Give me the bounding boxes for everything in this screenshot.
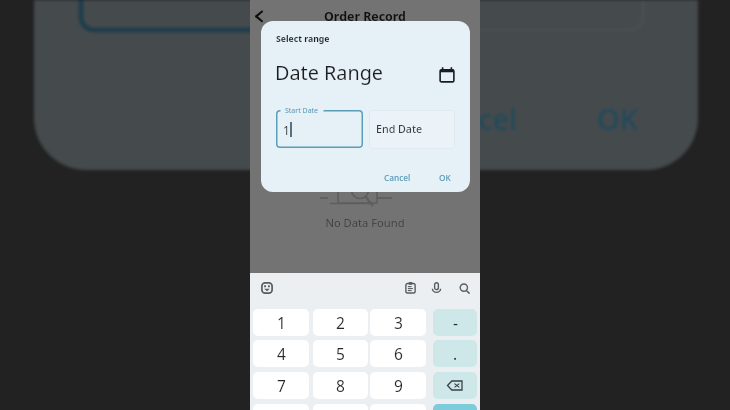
button[interactable]: . — [433, 340, 477, 367]
button[interactable] — [433, 372, 477, 399]
button[interactable]: - — [433, 309, 477, 336]
staticText: Cancel — [384, 172, 411, 183]
button[interactable]: 8 — [313, 372, 368, 399]
button[interactable]: 9 — [370, 372, 426, 399]
staticText: 9 — [394, 375, 403, 396]
staticText: 3 — [394, 312, 403, 333]
staticText: 5 — [336, 343, 345, 364]
button[interactable]: 5 — [313, 340, 368, 367]
button[interactable] — [433, 404, 477, 410]
button[interactable]: * — [253, 404, 309, 410]
staticText: 4 — [277, 343, 286, 364]
button[interactable]: Cancel — [379, 169, 416, 186]
button[interactable]: 0 — [313, 404, 368, 410]
button[interactable]: Back — [251, 6, 271, 26]
staticText: 8 — [336, 375, 345, 396]
button[interactable]: Emoji — [261, 282, 273, 294]
staticText: - — [453, 312, 458, 333]
staticText: OK — [597, 99, 639, 138]
button[interactable]: Open calendar picker — [439, 67, 455, 83]
button[interactable]: Clipboard — [405, 282, 416, 293]
staticText: Date Range — [275, 59, 384, 86]
staticText: 1 — [283, 122, 290, 138]
staticText: 6 — [394, 343, 403, 364]
staticText: End Date — [376, 122, 423, 137]
button[interactable]: Voice input — [431, 282, 442, 293]
staticText: 1 — [277, 312, 286, 333]
staticText: Start Date — [285, 106, 319, 116]
staticText: . — [453, 343, 458, 364]
button[interactable]: 6 — [370, 340, 426, 367]
staticText: 2 — [336, 312, 345, 333]
button[interactable]: 7 — [253, 372, 309, 399]
button[interactable]: 3 — [370, 309, 426, 336]
staticText: No Data Found — [250, 215, 480, 230]
button[interactable]: Search — [459, 283, 470, 294]
staticText: Cancel — [425, 99, 517, 138]
button[interactable]: End Date — [369, 110, 455, 149]
button[interactable]: Start Date — [276, 110, 363, 148]
staticText: Order Record — [250, 8, 480, 25]
button[interactable]: 2 — [313, 309, 368, 336]
button[interactable]: 4 — [253, 340, 309, 367]
staticText: 7 — [277, 375, 286, 396]
staticText: Select range — [276, 33, 330, 45]
button[interactable]: # — [370, 404, 426, 410]
staticText: OK — [439, 172, 451, 183]
button[interactable]: 1 — [253, 309, 309, 336]
button[interactable]: OK — [434, 169, 456, 186]
